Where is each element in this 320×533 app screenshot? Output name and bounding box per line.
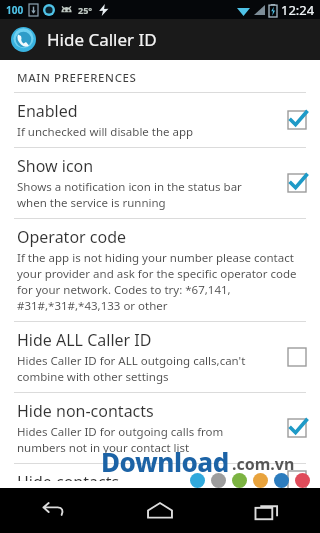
staticText: Hide Caller ID (47, 28, 157, 51)
button[interactable]: Show icon (0, 148, 320, 218)
button[interactable]: Checked (286, 172, 308, 194)
staticText: when the service is running (17, 195, 166, 211)
staticText: 100 (6, 3, 24, 17)
button[interactable]: Hide Caller ID (0, 19, 320, 60)
staticText: Enabled (17, 100, 78, 122)
staticText: combine with other settings (17, 369, 169, 385)
button[interactable]: Enabled (0, 93, 320, 147)
button[interactable]: Checked (286, 109, 308, 131)
button[interactable]: Unchecked (286, 471, 308, 481)
staticText: If unchecked will disable the app (17, 124, 194, 140)
button[interactable]: Checked (286, 417, 308, 439)
staticText: #31#,*31#,*43,133 or other (17, 298, 168, 314)
staticText: Hide contacts (17, 471, 120, 481)
button[interactable]: Operator code (0, 219, 320, 321)
staticText: .com.vn (232, 453, 295, 475)
staticText: MAIN PREFERENCES (17, 70, 137, 86)
staticText: your provider and ask for the specific o… (17, 266, 297, 282)
staticText: Shows a notification icon in the status … (17, 179, 242, 195)
staticText: Hide ALL Caller ID (17, 329, 152, 351)
staticText: If the app is not hiding your number ple… (17, 250, 294, 266)
staticText: for your network. Codes to try: *67,141, (17, 282, 231, 298)
staticText: Download (101, 444, 229, 479)
staticText: Hides Caller ID for outgoing calls from (17, 424, 224, 440)
staticText: Operator code (17, 226, 127, 248)
staticText: Show icon (17, 155, 94, 177)
button[interactable]: Unchecked (286, 346, 308, 368)
staticText: Hides Caller ID for ALL outgoing calls,c… (17, 353, 246, 369)
button[interactable]: Hide ALL Caller ID (0, 322, 320, 392)
staticText: 12:24 (281, 1, 315, 19)
button[interactable]: Hide non-contacts (0, 393, 320, 463)
staticText: Hide non-contacts (17, 400, 154, 422)
button[interactable]: Home (106, 488, 213, 533)
staticText: numbers not in your contact list (17, 440, 190, 456)
button[interactable]: Back (0, 488, 106, 533)
button[interactable]: Hide contacts (0, 464, 320, 488)
staticText: 25° (78, 4, 93, 16)
button[interactable]: Recent apps (213, 488, 320, 533)
